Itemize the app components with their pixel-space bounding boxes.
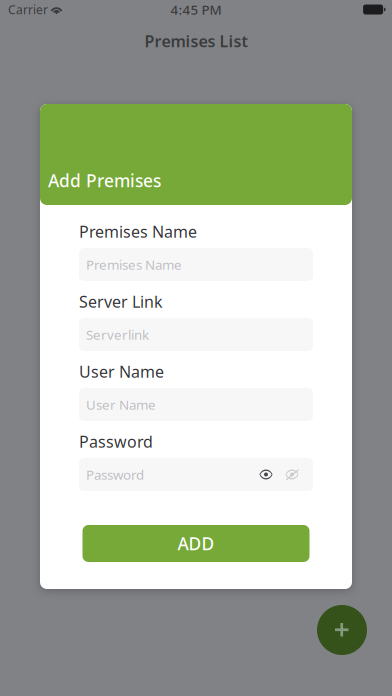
staticText: Premises Name [86, 256, 182, 273]
button[interactable]: Hide password [279, 459, 305, 490]
staticText: User Name [86, 396, 156, 413]
staticText: Carrier [8, 1, 48, 17]
staticText: Premises List [144, 30, 247, 52]
staticText: Server Link [79, 291, 163, 312]
button[interactable]: Show password [253, 459, 279, 490]
button[interactable]: Add premises [317, 605, 367, 655]
staticText: Premises Name [79, 221, 197, 242]
staticText: 4:45 PM [170, 1, 221, 18]
staticText: Add Premises [48, 169, 161, 192]
button[interactable]: ADD [82, 525, 309, 562]
staticText: ADD [177, 532, 214, 555]
staticText: Serverlink [86, 326, 149, 343]
staticText: User Name [79, 361, 164, 382]
staticText: Password [86, 466, 144, 483]
staticText: Password [79, 431, 153, 452]
